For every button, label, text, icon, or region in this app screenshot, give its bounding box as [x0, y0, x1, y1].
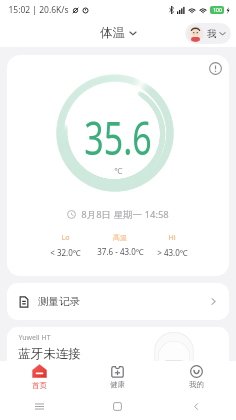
button[interactable]: 测量记录	[7, 283, 229, 320]
staticText: 测量记录	[38, 295, 80, 308]
button[interactable]: Back	[157, 392, 236, 420]
staticText: Lo	[61, 233, 70, 243]
button[interactable]: Yuwell HT	[7, 327, 229, 373]
button[interactable]: Recent apps	[0, 392, 78, 420]
staticText: Yuwell HT	[18, 333, 51, 343]
button[interactable]: 我的	[157, 361, 236, 392]
staticText: 首页	[32, 381, 47, 390]
staticText: > 43.0℃	[157, 247, 188, 258]
button[interactable]: 我	[185, 23, 231, 44]
staticText: ℃	[114, 165, 123, 177]
staticText: 35.6	[84, 106, 152, 169]
staticText: < 32.0℃	[50, 247, 81, 258]
button[interactable]: 健康	[78, 361, 157, 392]
staticText: Hi	[168, 233, 176, 243]
staticText: 高温	[113, 233, 127, 242]
button[interactable]: Home	[78, 392, 157, 420]
staticText: 体温	[100, 25, 125, 41]
staticText: 100	[213, 7, 222, 14]
staticText: 我的	[189, 380, 204, 389]
button[interactable]: Information	[209, 62, 222, 75]
staticText: 37.6 - 43.0℃	[97, 246, 144, 257]
staticText: 8月8日 星期一 14:58	[81, 208, 169, 221]
staticText: 15:02 | 20.6K/s	[8, 4, 69, 16]
staticText: 蓝牙未连接	[18, 346, 81, 362]
staticText: 健康	[110, 380, 125, 389]
staticText: 我	[207, 28, 217, 40]
button[interactable]: 体温	[96, 21, 141, 45]
button[interactable]: 首页	[0, 361, 78, 392]
